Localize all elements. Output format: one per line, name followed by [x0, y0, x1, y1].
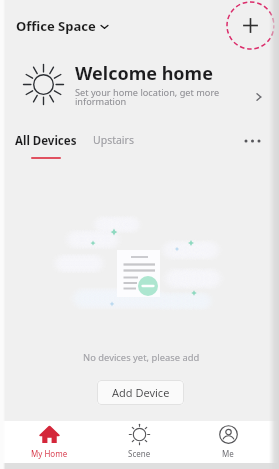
button[interactable]: Scene: [94, 421, 184, 463]
staticText: No devices yet, please add: [83, 351, 200, 364]
button[interactable]: All Devices: [15, 133, 77, 159]
button[interactable]: Add Device: [97, 380, 184, 405]
staticText: My Home: [31, 448, 68, 459]
staticText: Add Device: [112, 385, 170, 400]
staticText: Office Space: [16, 17, 96, 35]
button[interactable]: Office Space: [16, 17, 109, 35]
button[interactable]: Upstairs: [93, 133, 134, 147]
button[interactable]: Me: [183, 421, 273, 463]
staticText: Set your home location, get more informa…: [75, 86, 227, 108]
button[interactable]: My Home: [4, 421, 94, 463]
staticText: Upstairs: [93, 133, 134, 147]
staticText: Welcome home: [75, 61, 213, 86]
button[interactable]: More options: [239, 128, 265, 154]
staticText: Scene: [128, 448, 151, 459]
staticText: All Devices: [15, 133, 77, 149]
button[interactable]: Add device: [226, 1, 275, 50]
button[interactable]: Welcome home: [0, 48, 279, 120]
staticText: Me: [222, 448, 234, 459]
